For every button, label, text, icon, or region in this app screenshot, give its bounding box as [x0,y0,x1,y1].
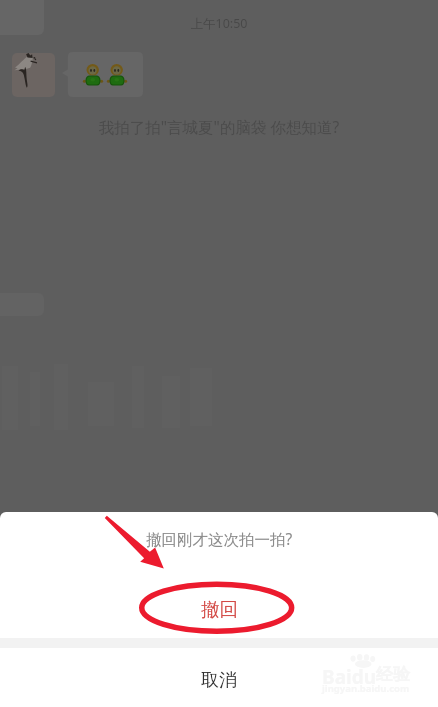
staticText: 取消 [201,669,237,692]
staticText: jingyan.baidu.com [322,682,410,695]
staticText: 经验 [376,664,410,685]
button[interactable]: Avatar [12,53,55,97]
staticText: Baidu [322,664,377,690]
staticText: 撤回刚才这次拍一拍? [0,528,438,549]
button[interactable]: 取消 [0,648,438,707]
button[interactable]: Emoji message [62,52,143,97]
staticText: 撤回 [201,598,238,621]
staticText: 上午10:50 [0,15,438,32]
staticText: 我拍了拍"言城夏"的脑袋 你想知道? [0,116,438,137]
button[interactable]: 撤回 [0,587,438,632]
